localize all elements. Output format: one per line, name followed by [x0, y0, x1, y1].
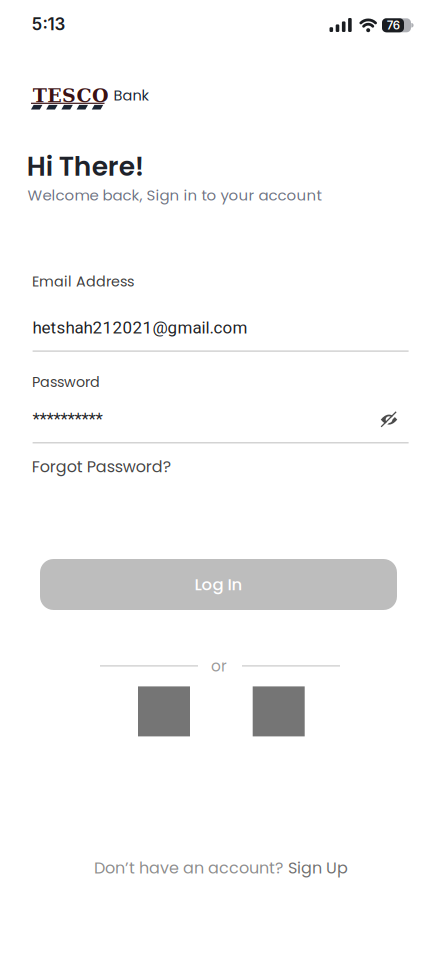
staticText: TESCO [33, 84, 109, 107]
staticText: 76 [387, 18, 400, 32]
staticText: Sign Up [288, 857, 348, 879]
staticText: Log In [194, 573, 242, 596]
button[interactable]: Log In [40, 559, 397, 610]
button[interactable]: Email Address [33, 318, 409, 352]
button[interactable]: Show password [378, 412, 400, 428]
staticText: 5:13 [31, 14, 65, 34]
button[interactable]: Sign in with Apple [253, 686, 305, 736]
button[interactable]: Password [33, 409, 409, 443]
button[interactable]: Sign Up [288, 857, 348, 879]
staticText: Email Address [32, 271, 134, 291]
staticText: Hi There! [27, 148, 144, 185]
staticText: ********** [33, 409, 103, 429]
staticText: Bank [113, 85, 148, 106]
staticText: hetshah212021@gmail.com [33, 318, 248, 338]
staticText: Forgot Password? [32, 455, 171, 478]
staticText: Password [32, 372, 100, 392]
button[interactable]: Forgot Password? [32, 455, 171, 478]
staticText: Welcome back, Sign in to your account [27, 185, 321, 206]
staticText: Don’t have an account? [94, 857, 283, 879]
staticText: or [211, 655, 227, 677]
button[interactable]: Sign in with Google [138, 686, 190, 736]
